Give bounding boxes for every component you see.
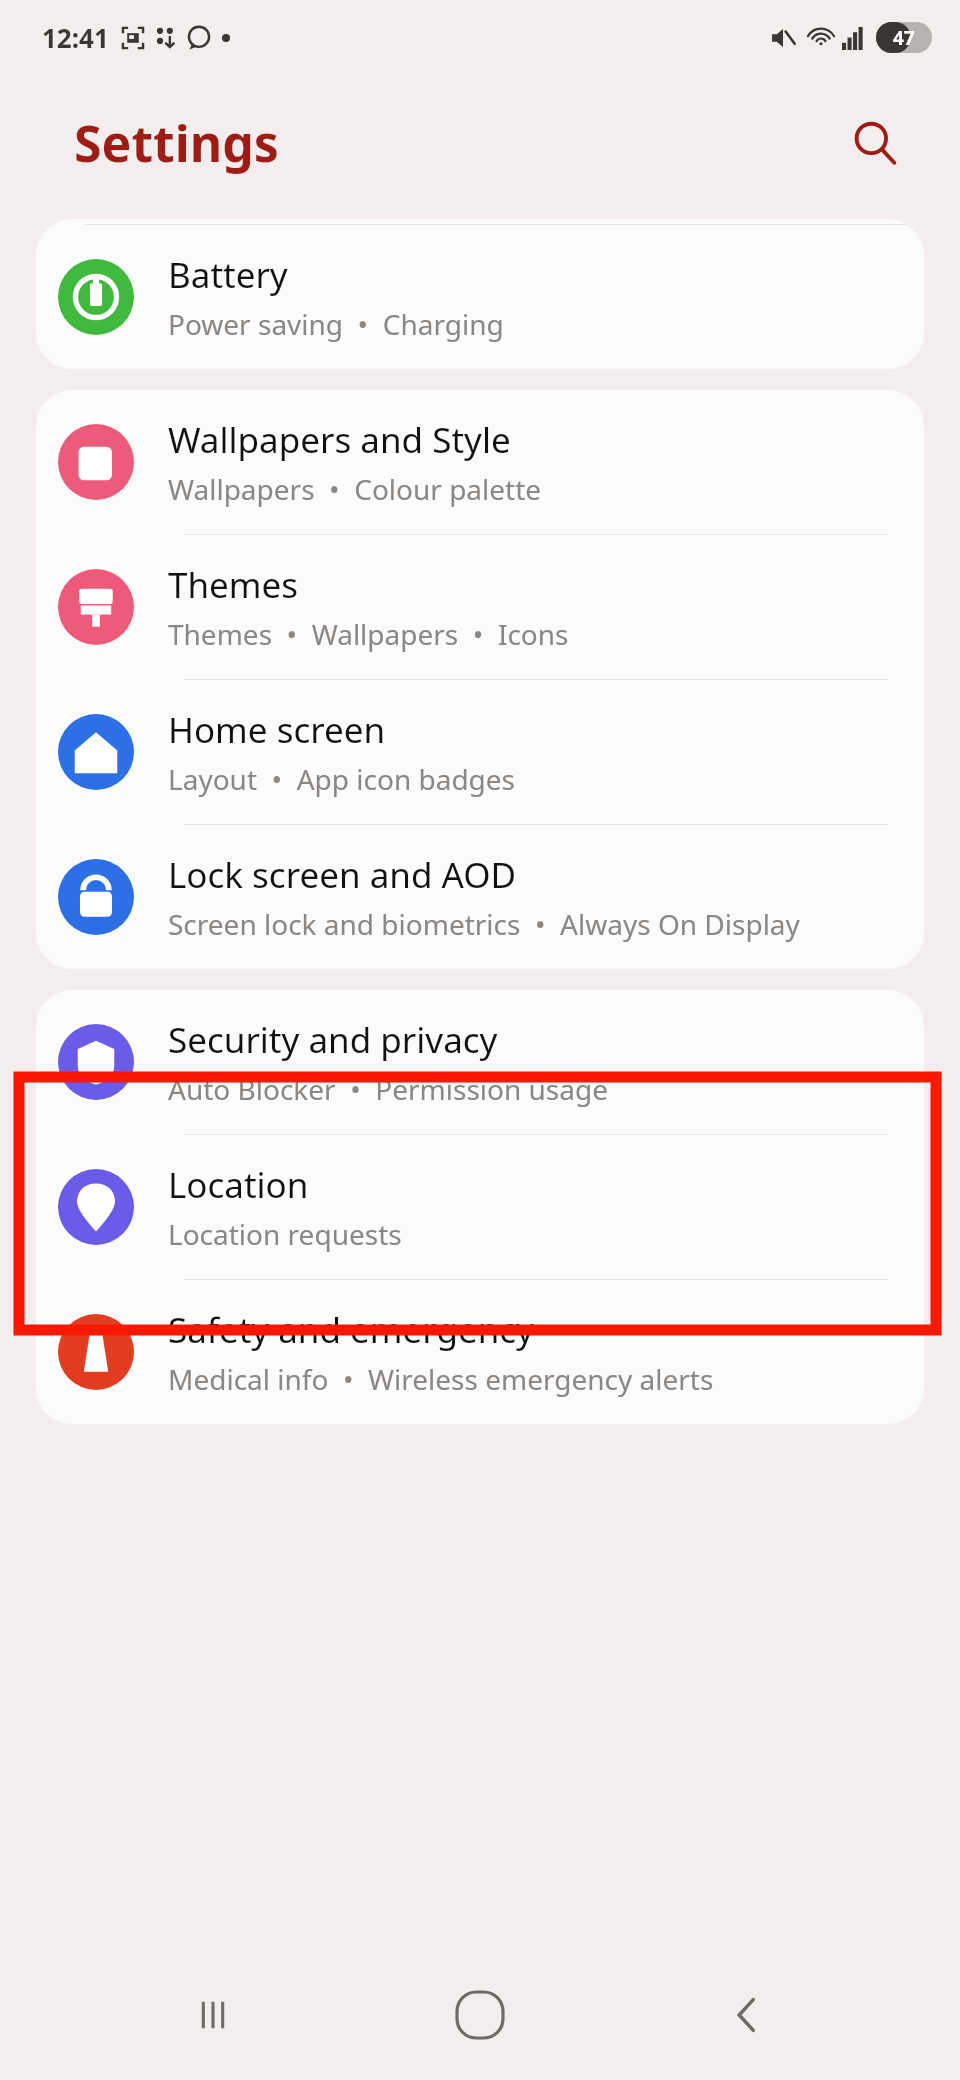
- button[interactable]: Home: [425, 1960, 535, 2070]
- staticText: Battery: [168, 251, 288, 299]
- button[interactable]: Battery: [36, 225, 924, 369]
- staticText: Power saving • Charging: [168, 305, 504, 343]
- staticText: Layout • App icon badges: [168, 760, 516, 798]
- staticText: Location requests: [168, 1215, 402, 1253]
- staticText: Security and privacy: [168, 1016, 498, 1064]
- button[interactable]: Back: [693, 1960, 803, 2070]
- staticText: Themes: [168, 561, 299, 609]
- staticText: Screen lock and biometrics • Always On D…: [168, 905, 800, 943]
- staticText: 12:41: [42, 20, 109, 55]
- button[interactable]: Home screen: [36, 680, 924, 824]
- button[interactable]: Search: [840, 108, 910, 178]
- staticText: Lock screen and AOD: [168, 851, 517, 899]
- staticText: Location: [168, 1161, 309, 1209]
- staticText: Medical info • Wireless emergency alerts: [168, 1360, 714, 1398]
- staticText: Home screen: [168, 706, 386, 754]
- staticText: 47: [893, 25, 915, 51]
- button[interactable]: Safety and emergency: [36, 1280, 924, 1424]
- button[interactable]: Wallpapers and Style: [36, 390, 924, 534]
- button[interactable]: Themes: [36, 535, 924, 679]
- button[interactable]: Location: [36, 1135, 924, 1279]
- staticText: Wallpapers • Colour palette: [168, 470, 542, 508]
- staticText: Themes • Wallpapers • Icons: [168, 615, 569, 653]
- staticText: Auto Blocker • Permission usage: [168, 1070, 608, 1108]
- button[interactable]: Recents: [158, 1960, 268, 2070]
- staticText: Safety and emergency: [168, 1306, 534, 1354]
- button[interactable]: Lock screen and AOD: [36, 825, 924, 969]
- staticText: Wallpapers and Style: [168, 416, 511, 464]
- button[interactable]: Security and privacy: [36, 990, 924, 1134]
- staticText: Settings: [74, 109, 279, 177]
